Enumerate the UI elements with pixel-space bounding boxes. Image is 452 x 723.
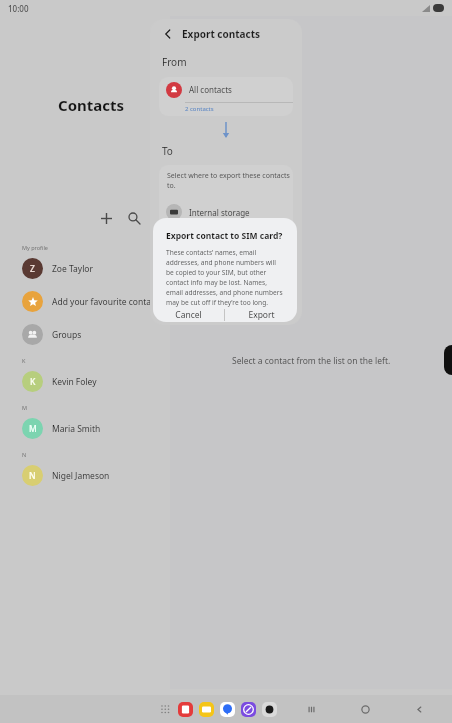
staticText: Kevin Foley — [52, 376, 97, 388]
staticText: Nigel Jameson — [52, 470, 110, 482]
staticText: K — [30, 376, 36, 388]
button[interactable]: App — [220, 702, 235, 717]
button[interactable]: Export — [225, 307, 297, 322]
button[interactable]: Add contact — [96, 208, 116, 228]
button[interactable]: Back — [160, 26, 176, 42]
button[interactable]: Back — [410, 700, 428, 718]
staticText: M — [29, 423, 37, 435]
button[interactable]: Cancel — [153, 307, 224, 322]
staticText: These contacts’ names, email addresses, … — [166, 248, 285, 307]
staticText: Select a contact from the list on the le… — [232, 355, 391, 367]
staticText: Export contact to SIM card? — [166, 230, 283, 242]
staticText: To — [162, 144, 173, 158]
staticText: Contacts — [58, 95, 125, 115]
button[interactable]: App — [199, 702, 214, 717]
staticText: Zoe Taylor — [52, 263, 94, 275]
button[interactable]: Search — [124, 208, 144, 228]
button[interactable]: recents — [302, 700, 320, 718]
staticText: All contacts — [189, 84, 232, 95]
staticText: From — [162, 55, 187, 69]
button[interactable]: K — [0, 365, 170, 398]
button[interactable]: Z — [0, 252, 170, 285]
staticText: Select where to export these contacts to… — [167, 171, 293, 191]
staticText: Internal storage — [189, 207, 250, 218]
staticText: Groups — [52, 329, 82, 341]
staticText: 10:00 — [8, 3, 29, 14]
staticText: Maria Smith — [52, 423, 101, 435]
staticText: Export contacts — [182, 27, 261, 41]
button[interactable]: M — [0, 412, 170, 445]
button[interactable]: Home — [356, 700, 374, 718]
button[interactable]: Internal storage — [166, 200, 293, 224]
button[interactable] — [166, 228, 293, 252]
button[interactable]: App — [178, 702, 193, 717]
button[interactable]: All contacts — [159, 77, 293, 116]
button[interactable]: Groups — [0, 318, 170, 351]
button[interactable]: Add your favourite contacts — [0, 285, 170, 318]
staticText: Export — [248, 309, 275, 321]
staticText: K — [22, 357, 26, 364]
staticText: N — [29, 470, 36, 482]
staticText: N — [22, 451, 27, 458]
button[interactable]: App — [262, 702, 277, 717]
staticText: Z — [30, 263, 35, 275]
button[interactable]: App — [241, 702, 256, 717]
staticText: M — [22, 404, 27, 411]
staticText: Add your favourite contacts — [52, 296, 163, 308]
staticText: Cancel — [175, 309, 202, 321]
button[interactable]: All apps — [158, 702, 172, 716]
staticText: 2 contacts — [185, 105, 214, 113]
staticText: My profile — [22, 244, 48, 251]
button[interactable]: N — [0, 459, 170, 492]
